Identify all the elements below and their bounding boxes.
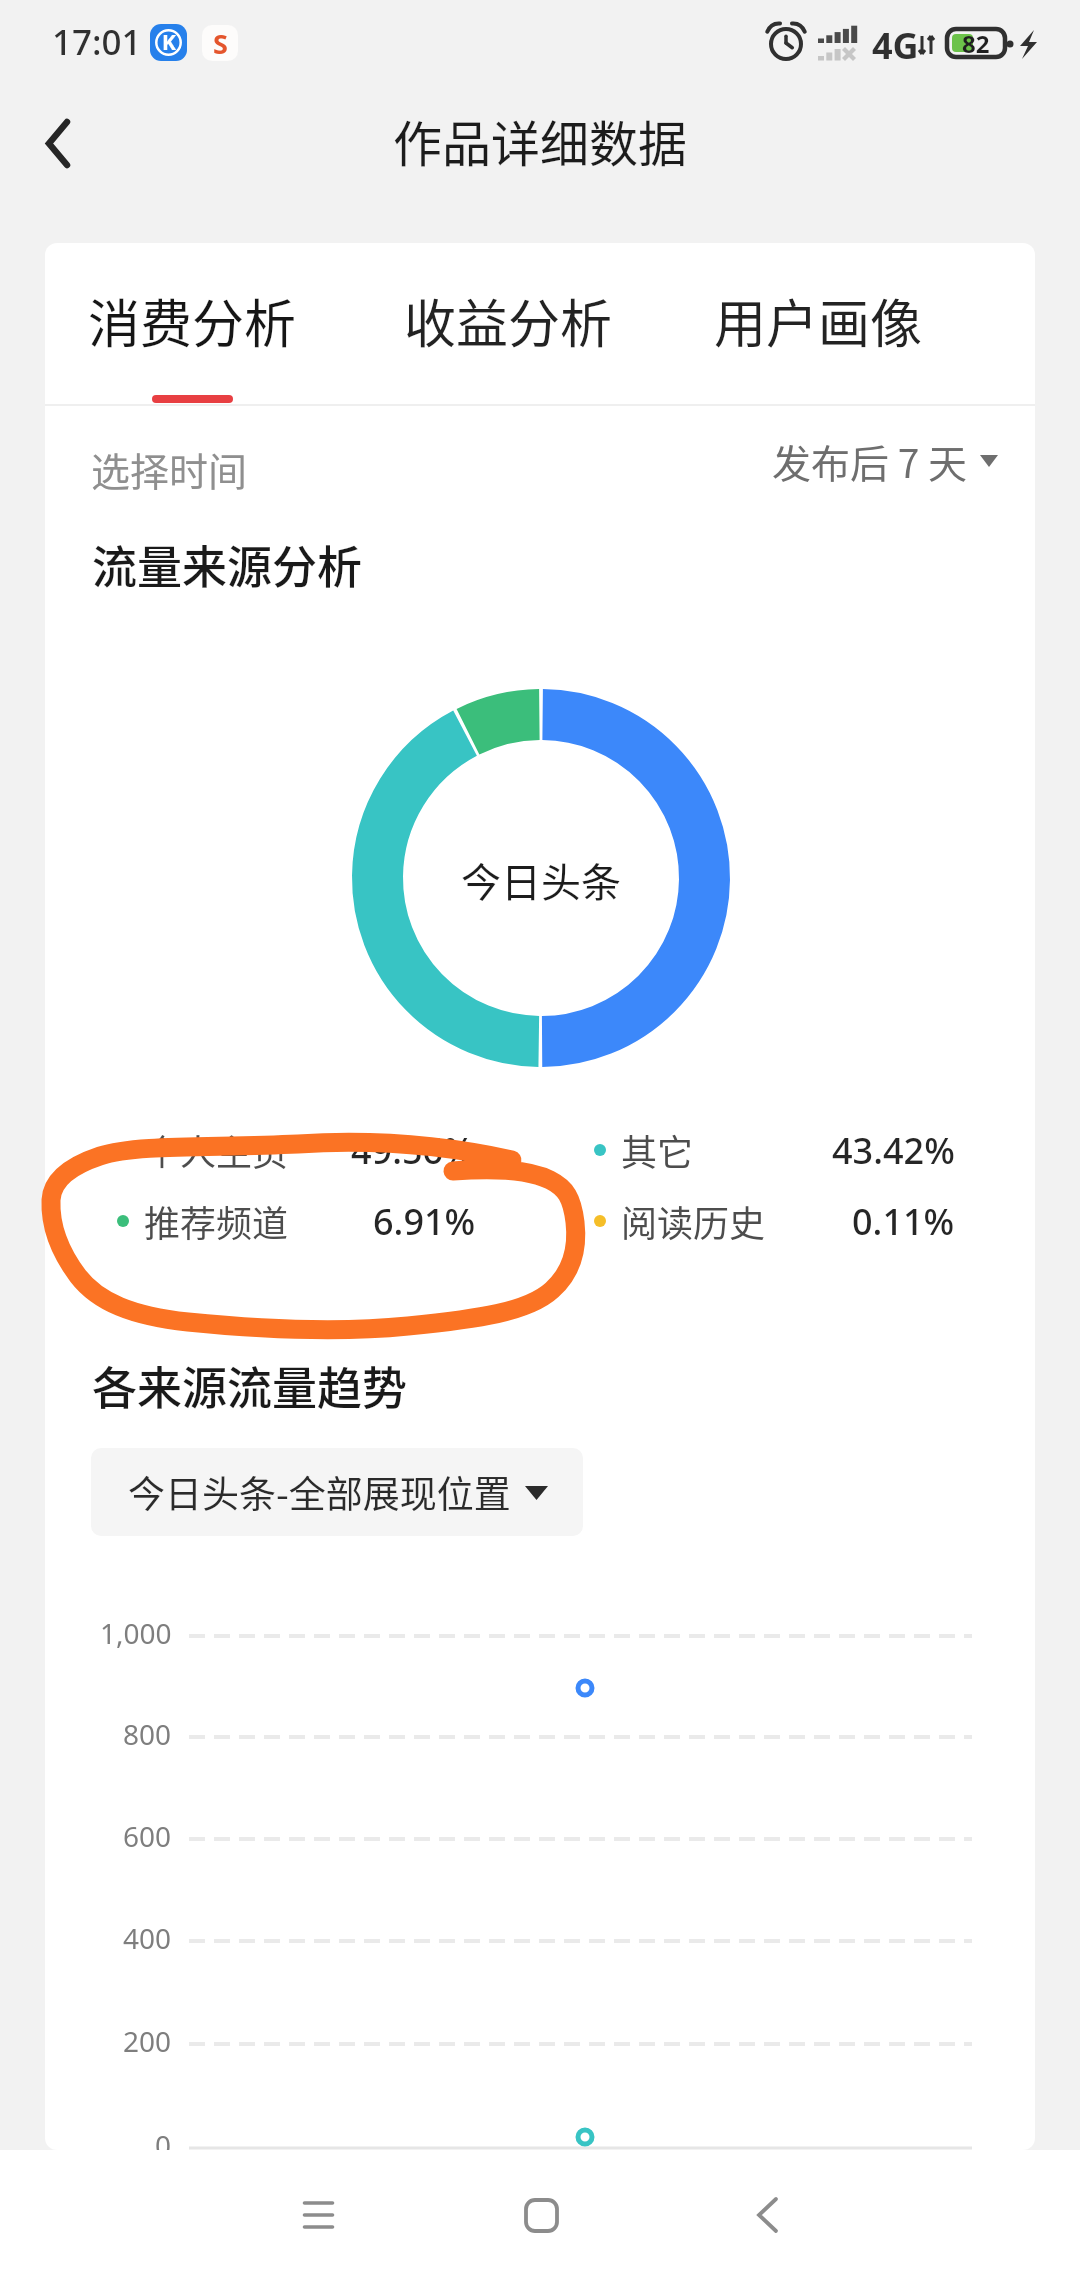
staticText: 阅读历史 xyxy=(621,1195,766,1247)
staticText: 推荐频道 xyxy=(144,1195,289,1247)
staticText: 选择时间 xyxy=(91,441,248,497)
staticText: K xyxy=(162,28,176,57)
staticText: 82 xyxy=(962,27,990,59)
button[interactable]: 今日头条-全部展现位置 xyxy=(91,1448,583,1536)
button[interactable]: 消费分析 xyxy=(45,243,342,404)
staticText: 其它 xyxy=(621,1124,694,1176)
staticText: 800 xyxy=(123,1715,172,1753)
button[interactable]: 发布后 7 天 xyxy=(756,421,1014,501)
staticText: 200 xyxy=(123,2022,172,2060)
staticText: 收益分析 xyxy=(404,283,613,358)
staticText: 600 xyxy=(123,1817,172,1855)
button[interactable]: 其它 xyxy=(582,1117,963,1183)
staticText: 今日头条-全部展现位置 xyxy=(128,1465,511,1519)
staticText: 43.42% xyxy=(832,1126,955,1175)
staticText: 消费分析 xyxy=(88,283,297,358)
staticText: 用户画像 xyxy=(714,283,923,358)
staticText: 0.11% xyxy=(852,1197,955,1246)
button[interactable]: Recents xyxy=(263,2150,373,2280)
button[interactable]: Back xyxy=(8,92,108,192)
button[interactable]: Back xyxy=(712,2150,822,2280)
button[interactable]: Home xyxy=(486,2150,596,2280)
staticText: 17:01 xyxy=(52,18,142,66)
staticText: 流量来源分析 xyxy=(92,532,363,597)
staticText: 6.91% xyxy=(373,1197,476,1246)
staticText: 各来源流量趋势 xyxy=(92,1353,408,1418)
button[interactable]: 阅读历史 xyxy=(582,1188,963,1254)
staticText: 个人主页 xyxy=(144,1124,289,1176)
button[interactable]: 推荐频道 xyxy=(105,1188,484,1254)
staticText: 作品详细数据 xyxy=(393,105,688,176)
staticText: 49.56% xyxy=(351,1126,474,1175)
staticText: 发布后 7 天 xyxy=(772,433,968,489)
button[interactable]: 收益分析 xyxy=(358,243,658,404)
button[interactable]: 个人主页 xyxy=(105,1117,482,1183)
staticText: 400 xyxy=(123,1919,172,1957)
staticText: 4G xyxy=(872,21,919,70)
button[interactable]: 用户画像 xyxy=(668,243,968,404)
staticText: 今日头条 xyxy=(461,851,621,909)
staticText: 0 xyxy=(155,2126,172,2150)
staticText: S xyxy=(213,25,228,61)
staticText: 1,000 xyxy=(100,1614,172,1652)
